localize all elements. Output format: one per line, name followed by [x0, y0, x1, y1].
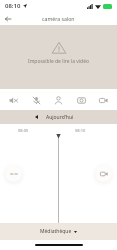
button[interactable]: Mute sound: [4, 91, 23, 109]
staticText: Médiathèque: [40, 228, 72, 235]
staticText: 08:10: [5, 2, 21, 10]
staticText: Aujourd'hui: [46, 114, 74, 121]
staticText: Impossible de lire la vidéo: [28, 58, 90, 65]
button[interactable]: Live view: [91, 161, 116, 186]
staticText: caméra salon: [42, 15, 75, 22]
button[interactable]: Record video: [94, 91, 113, 109]
button[interactable]: Detections: [49, 91, 68, 109]
button[interactable]: Take snapshot: [72, 91, 91, 109]
button[interactable]: Back: [2, 13, 14, 25]
button[interactable]: Médiathèque: [40, 228, 77, 235]
button[interactable]: Aujourd'hui: [31, 111, 87, 123]
staticText: 08:05: [18, 128, 29, 133]
staticText: 08:10: [75, 128, 86, 133]
button[interactable]: Mute microphone: [27, 91, 46, 109]
button[interactable]: Zoom timeline: [1, 161, 26, 186]
